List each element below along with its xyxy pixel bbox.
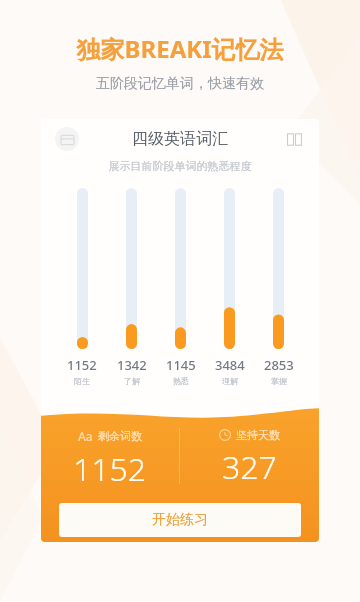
staticText: 掌握 <box>271 376 287 386</box>
staticText: 熟悉 <box>173 376 189 386</box>
button[interactable]: 开始练习 <box>59 503 301 537</box>
button[interactable]: Dictionary <box>55 127 79 151</box>
staticText: 了解 <box>124 376 140 386</box>
staticText: 剩余词数 <box>98 429 142 443</box>
staticText: 五阶段记忆单词，快速有效 <box>0 75 360 93</box>
staticText: 1152 <box>73 447 147 491</box>
staticText: 展示目前阶段单词的熟悉程度 <box>41 159 319 173</box>
staticText: 开始练习 <box>152 511 208 529</box>
staticText: 理解 <box>222 376 238 386</box>
staticText: 陌生 <box>74 376 90 386</box>
staticText: 1145 <box>166 356 196 374</box>
staticText: Aa <box>78 428 93 444</box>
staticText: 1152 <box>67 356 97 374</box>
staticText: 327 <box>222 445 277 489</box>
staticText: 四级英语词汇 <box>132 129 228 149</box>
staticText: 坚持天数 <box>236 428 280 442</box>
staticText: 2853 <box>264 356 294 374</box>
button[interactable]: Word book <box>283 128 305 150</box>
staticText: 3484 <box>215 356 245 374</box>
staticText: 独家BREAKI记忆法 <box>0 32 360 65</box>
staticText: 1342 <box>117 356 147 374</box>
